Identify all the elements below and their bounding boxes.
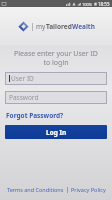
staticText: Please enter your User ID to login bbox=[10, 49, 102, 67]
staticText: Log In bbox=[46, 128, 67, 137]
staticText: User ID bbox=[11, 74, 34, 83]
staticText: Password bbox=[9, 93, 39, 102]
staticText: 100% bbox=[82, 2, 93, 7]
button[interactable]: Terms and Conditions bbox=[6, 185, 65, 194]
button[interactable]: Forgot Password? bbox=[5, 110, 65, 121]
button[interactable]: my bbox=[18, 21, 95, 32]
staticText: 18:55 bbox=[98, 1, 110, 7]
staticText: my bbox=[36, 22, 46, 31]
staticText: Wealth bbox=[72, 22, 95, 31]
button[interactable]: Log In bbox=[5, 125, 107, 139]
button[interactable]: Privacy Policy bbox=[70, 185, 107, 194]
button[interactable]: Password bbox=[5, 91, 107, 104]
staticText: Tailored bbox=[46, 22, 72, 31]
button[interactable]: User ID bbox=[5, 72, 107, 85]
staticText: Terms and Conditions bbox=[7, 186, 64, 193]
staticText: Forgot Password? bbox=[6, 111, 64, 120]
staticText: Privacy Policy bbox=[71, 186, 106, 193]
